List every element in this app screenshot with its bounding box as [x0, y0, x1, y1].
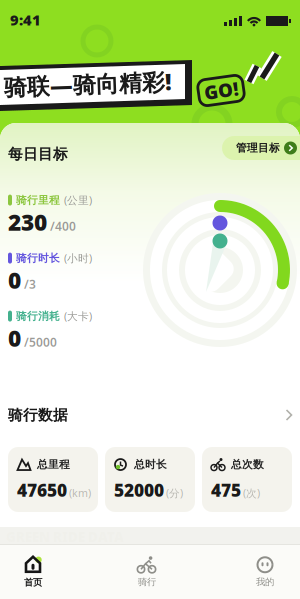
staticText: 骑联—骑向精彩!: [4, 69, 172, 99]
staticText: (km): [69, 486, 91, 500]
staticText: 总时长: [134, 458, 167, 471]
staticText: 52000: [114, 478, 164, 501]
staticText: 骑行里程: [16, 193, 60, 207]
staticText: GREEN RIDE DATA: [6, 528, 124, 546]
staticText: /400: [50, 218, 76, 234]
staticText: (小时): [64, 251, 92, 265]
staticText: 0: [8, 323, 21, 353]
staticText: (分): [166, 486, 183, 500]
staticText: 骑行消耗: [16, 309, 60, 323]
staticText: GO!: [204, 78, 238, 103]
staticText: 骑行: [138, 576, 156, 588]
staticText: /5000: [24, 334, 57, 350]
staticText: /3: [24, 276, 36, 292]
staticText: 总次数: [231, 458, 264, 471]
staticText: 0: [8, 265, 21, 295]
staticText: 475: [211, 478, 241, 501]
button[interactable]: 我的: [232, 549, 298, 595]
staticText: 47650: [17, 478, 67, 501]
button[interactable]: GO!: [197, 76, 245, 105]
staticText: 9:41: [10, 10, 41, 29]
staticText: 230: [8, 207, 47, 237]
staticText: 我的: [256, 576, 274, 588]
button[interactable]: 管理目标: [222, 136, 300, 160]
staticText: 骑行时长: [16, 251, 60, 265]
staticText: 管理目标: [236, 141, 280, 154]
staticText: 骑行数据: [8, 406, 68, 424]
staticText: (次): [243, 486, 260, 500]
staticText: 总里程: [37, 458, 70, 471]
staticText: 首页: [24, 577, 42, 588]
staticText: (公里): [64, 193, 92, 207]
button[interactable]: 骑行: [114, 549, 180, 595]
button[interactable]: 骑行数据: [8, 405, 292, 425]
staticText: (大卡): [64, 309, 92, 323]
button[interactable]: 首页: [0, 549, 66, 595]
staticText: 每日目标: [8, 145, 68, 163]
